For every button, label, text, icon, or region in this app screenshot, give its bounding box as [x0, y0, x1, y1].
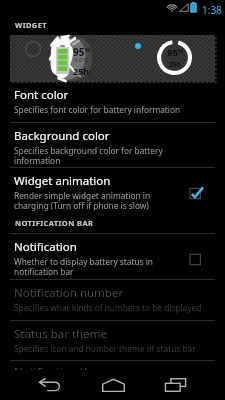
staticText: % — [85, 46, 91, 54]
staticText: Status bar theme — [14, 326, 107, 342]
button[interactable]: Notification theme — [0, 361, 225, 370]
staticText: Specifies icon and number theme of statu… — [14, 343, 196, 354]
staticText: Whether to display battery status in not… — [14, 256, 153, 277]
staticText: Notification number — [14, 285, 124, 301]
button[interactable]: Widget animation — [0, 168, 225, 212]
staticText: 25h — [73, 65, 90, 77]
staticText: 95 — [73, 45, 85, 59]
staticText: Notification theme — [14, 364, 115, 370]
staticText: Render simple widget animation in chargi… — [14, 190, 151, 211]
staticText: 0.0°C — [74, 56, 89, 64]
button[interactable]: Notification — [0, 234, 225, 279]
staticText: WIDGET — [15, 20, 48, 30]
button[interactable]: Notification number — [0, 280, 225, 320]
button[interactable]: Widget animation — [185, 181, 207, 203]
button[interactable]: Background color — [0, 123, 225, 167]
staticText: Font color — [14, 87, 69, 103]
staticText: NOTIFICATION BAR — [15, 218, 94, 228]
button[interactable]: Home — [91, 370, 136, 400]
staticText: Background color — [14, 128, 110, 144]
staticText: 1:38 — [202, 3, 222, 17]
button[interactable]: Recent apps — [153, 370, 198, 400]
button[interactable]: Back — [27, 370, 72, 400]
staticText: Specifies font color for battery informa… — [14, 104, 181, 115]
staticText: Specifies what kinds of numbers to be di… — [14, 302, 202, 313]
staticText: 95 — [167, 46, 178, 59]
button[interactable]: Font color — [0, 82, 225, 122]
staticText: Widget animation — [14, 173, 111, 189]
button[interactable]: Notification — [185, 247, 207, 269]
staticText: 25h — [169, 60, 181, 69]
staticText: Notification — [14, 239, 77, 255]
button[interactable]: Status bar theme — [0, 321, 225, 360]
staticText: Specifies background color for battery i… — [14, 145, 163, 166]
staticText: % — [178, 47, 183, 54]
